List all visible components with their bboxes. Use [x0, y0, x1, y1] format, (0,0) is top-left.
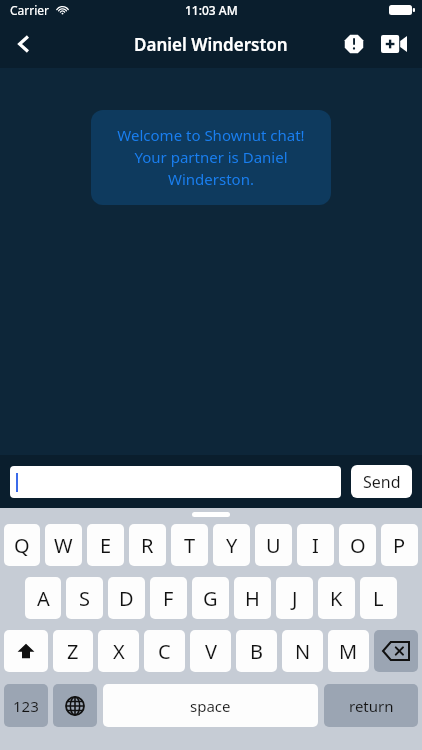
button[interactable]: N — [282, 630, 323, 672]
staticText: Z — [67, 638, 79, 665]
staticText: U — [266, 532, 281, 559]
staticText: return — [349, 696, 394, 716]
staticText: E — [100, 532, 112, 559]
button[interactable]: U — [255, 524, 292, 566]
button[interactable]: G — [192, 577, 229, 619]
staticText: Q — [14, 532, 30, 559]
button[interactable]: return — [324, 684, 418, 727]
staticText: B — [250, 638, 263, 665]
button[interactable]: C — [144, 630, 185, 672]
button[interactable]: J — [276, 577, 313, 619]
button[interactable]: Backspace — [374, 630, 418, 672]
button[interactable]: K — [318, 577, 355, 619]
staticText: 11:03 AM — [185, 2, 238, 18]
button[interactable]: M — [328, 630, 369, 672]
button[interactable]: Send — [351, 465, 412, 498]
staticText: Welcome to Shownut chat! Your partner is… — [105, 125, 317, 190]
staticText: O — [350, 532, 366, 559]
button[interactable]: Q — [4, 524, 40, 566]
staticText: F — [163, 585, 174, 612]
staticText: Daniel Winderston — [134, 33, 288, 56]
button[interactable]: Change keyboard — [53, 684, 97, 727]
staticText: W — [54, 532, 73, 559]
staticText: space — [190, 696, 231, 716]
button[interactable]: S — [66, 577, 103, 619]
staticText: L — [373, 585, 384, 612]
button[interactable]: D — [108, 577, 145, 619]
button[interactable]: Y — [213, 524, 250, 566]
staticText: 123 — [13, 696, 39, 716]
button[interactable]: W — [45, 524, 82, 566]
button[interactable]: Keyboard handle — [192, 512, 230, 517]
button[interactable] — [10, 466, 341, 498]
staticText: C — [158, 638, 171, 665]
button[interactable]: P — [381, 524, 418, 566]
staticText: Send — [363, 471, 401, 493]
button[interactable]: Start video call — [374, 24, 414, 64]
button[interactable]: V — [190, 630, 231, 672]
button[interactable]: O — [339, 524, 376, 566]
button[interactable]: Report user — [334, 24, 374, 64]
button[interactable]: Back — [0, 20, 48, 68]
staticText: R — [141, 532, 154, 559]
button[interactable]: space — [103, 684, 318, 727]
staticText: Y — [226, 532, 238, 559]
staticText: A — [37, 585, 50, 612]
staticText: I — [312, 532, 319, 559]
button[interactable]: L — [360, 577, 397, 619]
button[interactable]: R — [129, 524, 166, 566]
staticText: N — [295, 638, 311, 665]
button[interactable]: Welcome to Shownut chat! Your partner is… — [91, 110, 331, 205]
button[interactable]: H — [234, 577, 271, 619]
staticText: G — [203, 585, 218, 612]
button[interactable]: E — [87, 524, 124, 566]
button[interactable]: A — [25, 577, 61, 619]
button[interactable]: B — [236, 630, 277, 672]
staticText: J — [292, 585, 298, 612]
button[interactable]: Z — [53, 630, 93, 672]
staticText: T — [184, 532, 196, 559]
button[interactable]: I — [297, 524, 334, 566]
staticText: X — [113, 638, 125, 665]
staticText: S — [79, 585, 90, 612]
staticText: P — [393, 532, 406, 559]
button[interactable]: Shift — [4, 630, 48, 672]
button[interactable]: X — [98, 630, 139, 672]
staticText: K — [330, 585, 343, 612]
staticText: M — [339, 638, 358, 665]
staticText: Carrier — [10, 2, 50, 18]
button[interactable]: F — [150, 577, 187, 619]
button[interactable]: 123 — [4, 684, 48, 727]
button[interactable]: T — [171, 524, 208, 566]
staticText: H — [245, 585, 260, 612]
staticText: D — [119, 585, 134, 612]
staticText: V — [205, 638, 217, 665]
